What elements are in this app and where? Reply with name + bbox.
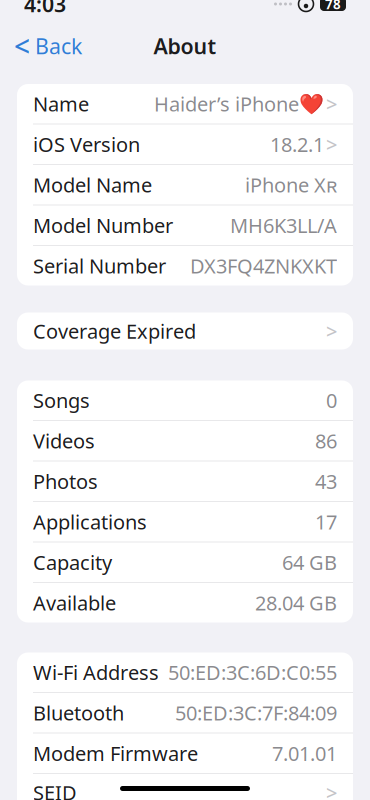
button[interactable]: Applications bbox=[17, 502, 353, 541]
button[interactable]: SEID bbox=[17, 774, 353, 800]
staticText: iPhone Xʀ bbox=[245, 171, 337, 198]
button[interactable]: Serial Number bbox=[17, 246, 353, 285]
staticText: DX3FQ4ZNKXKT bbox=[190, 252, 337, 279]
staticText: Back bbox=[35, 32, 82, 60]
button[interactable]: Coverage Expired bbox=[17, 312, 353, 349]
staticText: Modem Firmware bbox=[33, 740, 198, 767]
button[interactable]: Model Number bbox=[17, 205, 353, 245]
button[interactable]: Modem Firmware bbox=[17, 733, 353, 773]
staticText: Capacity bbox=[33, 549, 112, 576]
button[interactable]: Name bbox=[17, 84, 353, 123]
button[interactable]: iOS Version bbox=[17, 124, 353, 164]
staticText: MH6K3LL/A bbox=[230, 212, 337, 239]
staticText: Wi-Fi Address bbox=[33, 659, 159, 686]
button[interactable]: Wi-Fi Address bbox=[17, 652, 353, 692]
staticText: Applications bbox=[33, 508, 147, 535]
staticText: ❤️ bbox=[299, 92, 324, 115]
staticText: 64 GB bbox=[282, 549, 337, 576]
staticText: 7.01.01 bbox=[272, 740, 337, 767]
staticText: About bbox=[153, 32, 216, 60]
staticText: 78 bbox=[325, 0, 341, 13]
button[interactable]: Songs bbox=[17, 380, 353, 420]
staticText: 86 bbox=[315, 427, 337, 454]
button[interactable]: Available bbox=[17, 583, 353, 622]
staticText: iOS Version bbox=[33, 131, 140, 158]
button[interactable]: Bluetooth bbox=[17, 693, 353, 732]
button[interactable]: Photos bbox=[17, 461, 353, 501]
staticText: Model Number bbox=[33, 212, 173, 239]
staticText: Coverage Expired bbox=[33, 318, 196, 344]
staticText: 17 bbox=[315, 508, 337, 535]
staticText: Photos bbox=[33, 468, 98, 495]
staticText: > bbox=[326, 779, 337, 800]
staticText: > bbox=[326, 131, 337, 158]
staticText: 50:ED:3C:6D:C0:55 bbox=[168, 659, 337, 686]
staticText: Songs bbox=[33, 387, 90, 414]
staticText: Videos bbox=[33, 427, 95, 454]
staticText: Model Name bbox=[33, 171, 152, 198]
button[interactable]: Model Name bbox=[17, 165, 353, 204]
staticText: 43 bbox=[315, 468, 337, 495]
staticText: > bbox=[326, 90, 337, 117]
button[interactable]: Capacity bbox=[17, 542, 353, 582]
staticText: 50:ED:3C:7F:84:09 bbox=[175, 699, 337, 726]
staticText: Haider’s iPhone bbox=[154, 90, 299, 117]
staticText: Name bbox=[33, 90, 89, 117]
staticText: 18.2.1 bbox=[270, 131, 324, 158]
staticText: > bbox=[326, 318, 337, 344]
button[interactable]: Videos bbox=[17, 421, 353, 460]
staticText: Bluetooth bbox=[33, 699, 124, 726]
staticText: 28.04 GB bbox=[255, 589, 337, 616]
staticText: < bbox=[14, 27, 30, 65]
staticText: Serial Number bbox=[33, 252, 166, 279]
staticText: 4:03 bbox=[24, 0, 66, 18]
staticText: 0 bbox=[326, 387, 337, 414]
button[interactable]: < bbox=[4, 29, 92, 63]
staticText: SEID bbox=[33, 779, 77, 800]
staticText: Available bbox=[33, 589, 116, 616]
